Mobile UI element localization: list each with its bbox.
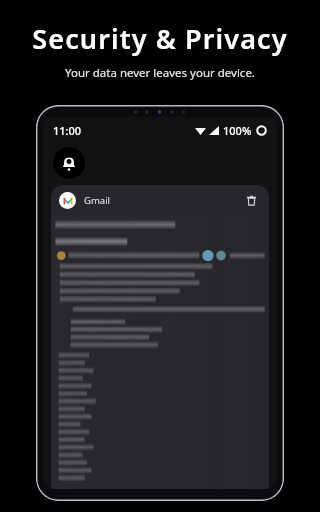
staticText: Security & Privacy (32, 20, 288, 57)
button[interactable]: Gmail (51, 185, 269, 489)
staticText: Your data never leaves your device. (65, 65, 255, 81)
button[interactable]: Delete (242, 191, 260, 209)
button[interactable]: Notification (53, 147, 85, 179)
staticText: 11:00 (53, 123, 82, 138)
staticText: 100% (223, 123, 252, 138)
staticText: Gmail (84, 194, 111, 207)
